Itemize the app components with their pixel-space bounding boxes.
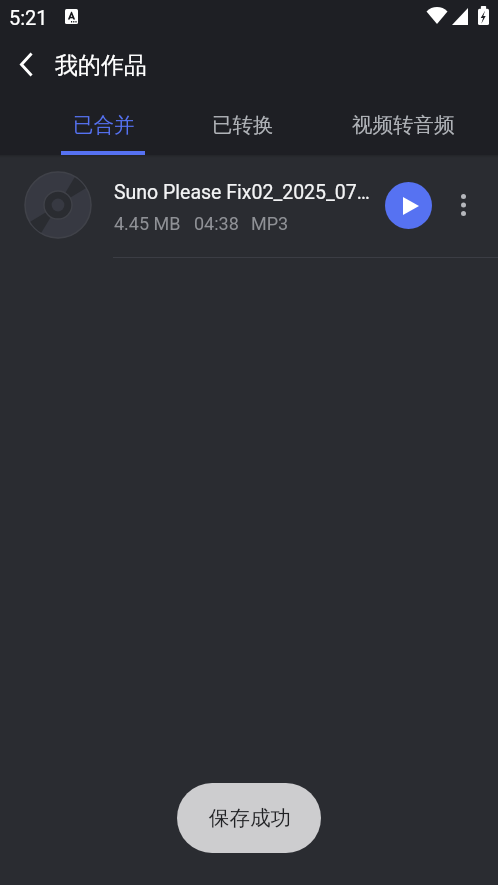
staticText: 5:21	[9, 6, 48, 29]
staticText: 已合并	[73, 112, 135, 138]
button[interactable]: More options	[441, 183, 485, 227]
button[interactable]	[0, 155, 380, 257]
staticText: 保存成功	[209, 805, 291, 831]
staticText: MP3	[251, 213, 289, 234]
staticText: 04:38	[194, 213, 239, 234]
staticText: 视频转音频	[352, 112, 455, 138]
button[interactable]: Play	[385, 182, 432, 229]
button[interactable]: 视频转音频	[312, 94, 494, 155]
staticText: Suno Please Fix02_2025_07…	[114, 181, 372, 204]
button[interactable]: 保存成功	[177, 783, 321, 853]
staticText: 已转换	[212, 112, 274, 138]
button[interactable]: 已转换	[173, 94, 312, 155]
button[interactable]: 已合并	[35, 94, 173, 155]
button[interactable]: Back	[2, 40, 50, 88]
staticText: 我的作品	[55, 51, 147, 80]
staticText: 4.45 MB	[114, 213, 181, 234]
